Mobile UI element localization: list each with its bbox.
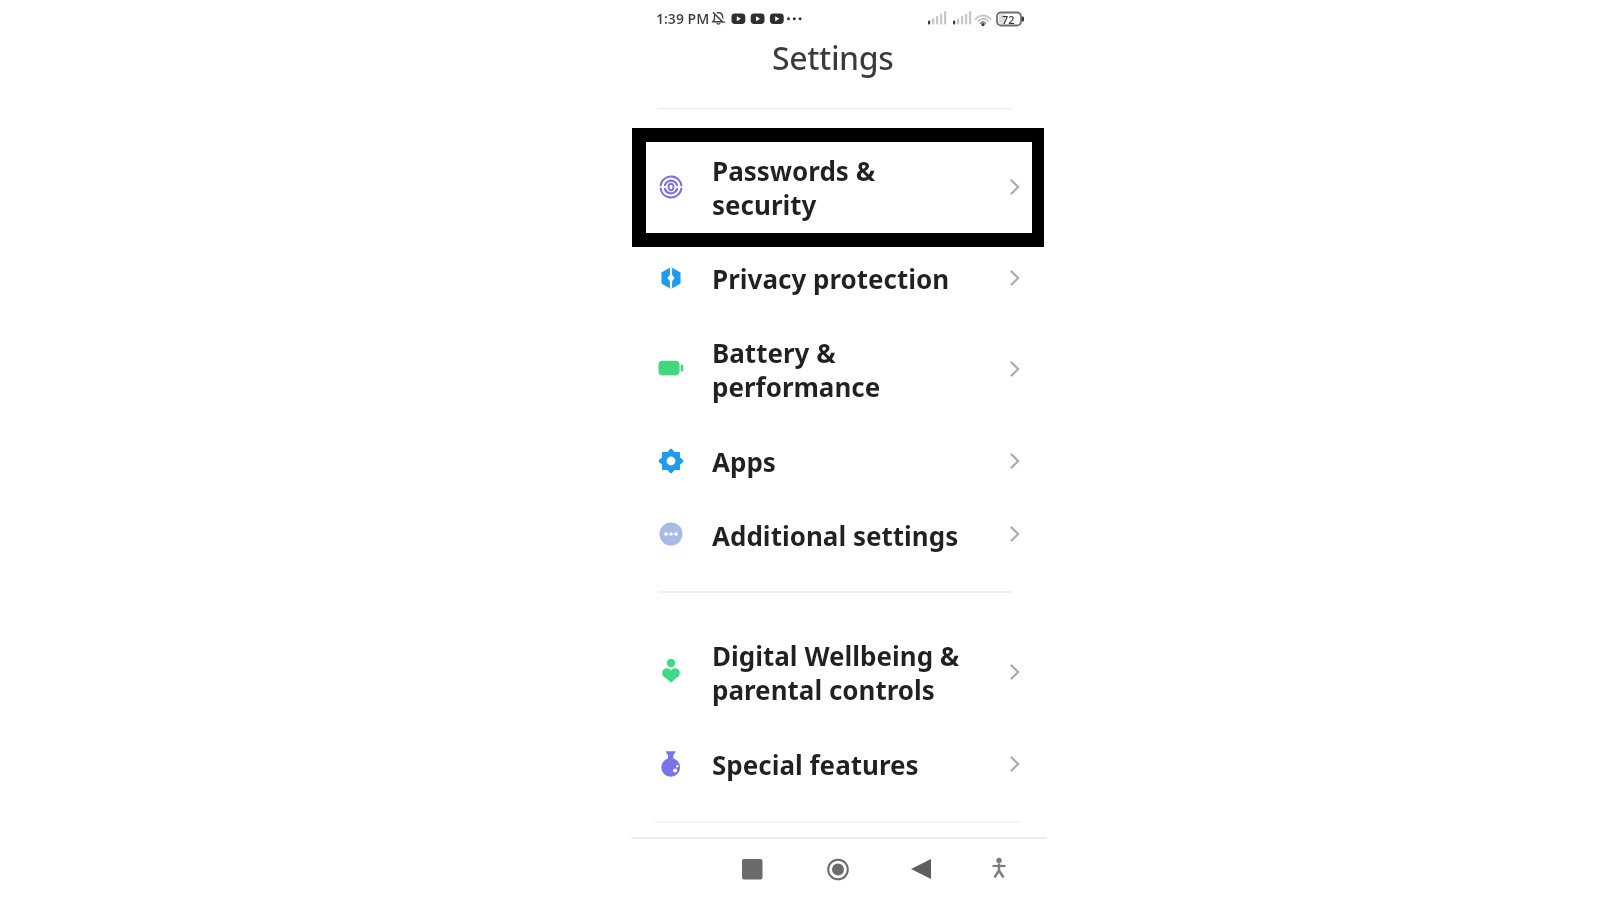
staticText: Apps [712, 444, 776, 479]
button[interactable]: Digital Wellbeing & parental controls [631, 622, 1047, 722]
staticText: Privacy protection [712, 261, 950, 296]
button[interactable]: Battery & performance [631, 319, 1047, 419]
button[interactable]: Additional settings [631, 498, 1047, 572]
button[interactable] [977, 846, 1021, 890]
button[interactable]: Special features [631, 727, 1047, 801]
button[interactable] [816, 847, 860, 891]
button[interactable] [730, 847, 774, 891]
staticText: Passwords & security [712, 153, 876, 222]
staticText: Battery & performance [712, 335, 881, 404]
button[interactable]: Passwords & security [646, 142, 1032, 233]
button[interactable] [899, 847, 943, 891]
staticText: Special features [712, 747, 919, 782]
staticText: 1:39 PM [656, 9, 710, 28]
staticText: Additional settings [712, 518, 959, 553]
staticText: 72 [1002, 12, 1015, 27]
button[interactable]: Privacy protection [631, 241, 1047, 315]
staticText: Digital Wellbeing & parental controls [712, 638, 960, 707]
button[interactable]: Apps [631, 424, 1047, 498]
staticText: Settings [772, 36, 894, 80]
